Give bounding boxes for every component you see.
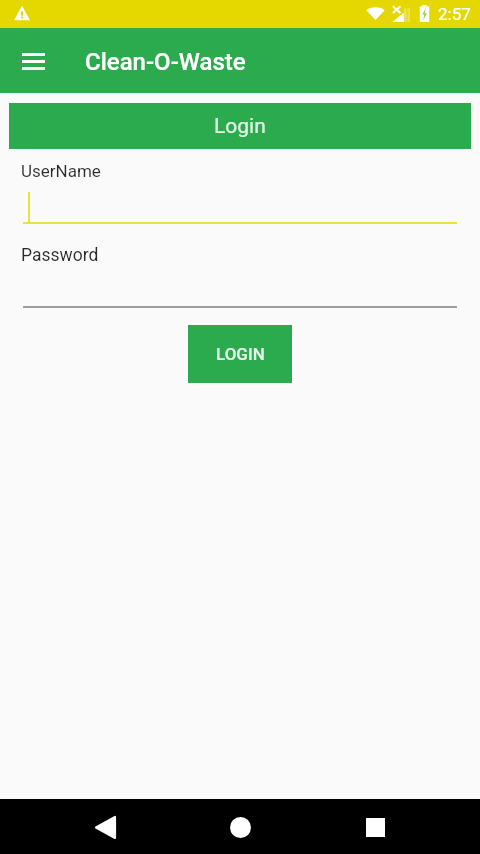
staticText: UserName [21, 161, 101, 181]
button[interactable]: Open navigation menu [11, 39, 55, 83]
button[interactable]: Recent apps [350, 802, 400, 852]
staticText: Login [214, 114, 266, 139]
button[interactable]: LOGIN [188, 325, 292, 383]
staticText: 2:57 [438, 4, 471, 24]
button[interactable]: Home [215, 802, 265, 852]
button[interactable]: Login [9, 103, 471, 149]
staticText: Clean-O-Waste [85, 48, 246, 76]
staticText: Password [21, 245, 99, 266]
staticText: LOGIN [216, 344, 265, 364]
button[interactable]: Back [80, 802, 130, 852]
